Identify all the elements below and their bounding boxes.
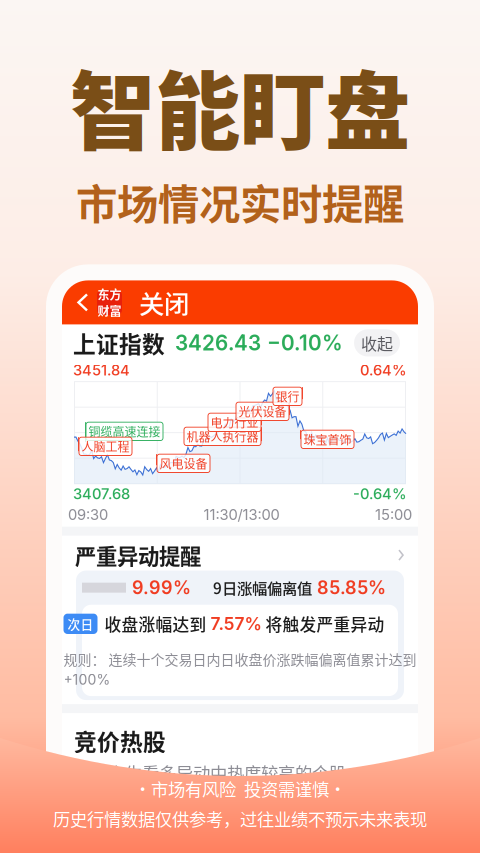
staticText: 严重异动提醒 [75, 540, 201, 571]
staticText: 上证指数 [73, 326, 165, 359]
staticText: 关闭 [139, 284, 189, 321]
staticText: 09:30 [68, 506, 108, 524]
staticText: +100% [63, 671, 110, 688]
staticText: 珠宝首饰 [303, 431, 351, 448]
staticText: 光伏设备 [238, 403, 286, 420]
staticText: 财富 [97, 302, 121, 319]
staticText: 次日 [67, 615, 93, 633]
staticText: 收起 [361, 331, 393, 354]
staticText: -0.64% [353, 485, 407, 503]
button[interactable]: 关闭 [122, 275, 189, 330]
staticText: 3407.68 [73, 485, 130, 503]
staticText: 规则： [63, 649, 105, 669]
staticText: 智能盯盘 [70, 44, 410, 168]
staticText: 0.64% [360, 361, 407, 379]
staticText: 风电设备 [159, 455, 207, 472]
staticText: 展示产生看多异动中热度较高的个股 [74, 760, 346, 785]
staticText: 85.85% [317, 577, 386, 599]
staticText: ·市场有风险 投资需谨慎· [134, 776, 346, 801]
staticText: 9日涨幅偏离值 [213, 576, 312, 599]
button[interactable]: 收起 [354, 329, 400, 356]
staticText: 历史行情数据仅供参考，过往业绩不预示未来表现 [53, 806, 427, 831]
staticText: 7.57% [210, 613, 261, 634]
staticText: 9.99% [132, 577, 191, 599]
staticText: 11:30/13:00 [203, 506, 279, 524]
staticText: 市场情况实时提醒 [76, 172, 404, 231]
staticText: 银行 [275, 388, 299, 405]
staticText: 收盘涨幅达到 [104, 612, 206, 636]
button[interactable]: 返回 [62, 281, 122, 324]
staticText: −0.10% [267, 330, 343, 355]
staticText: 3426.43 [175, 330, 261, 355]
button[interactable]: 严重异动提醒 [62, 536, 418, 571]
staticText: 铜缆高速连接 [88, 423, 160, 440]
staticText: 将触发严重异动 [265, 612, 384, 636]
staticText: 连续十个交易日内日收盘价涨跌幅偏离值累计达到 [108, 649, 416, 669]
staticText: 3451.84 [73, 361, 130, 379]
staticText: 15:00 [375, 506, 412, 524]
staticText: 东方 [97, 285, 121, 303]
staticText: 人脑工程 [81, 438, 129, 455]
staticText: 电力行业 [210, 414, 258, 431]
staticText: 机器人执行器 [186, 428, 258, 445]
staticText: 竞价热股 [74, 724, 166, 757]
